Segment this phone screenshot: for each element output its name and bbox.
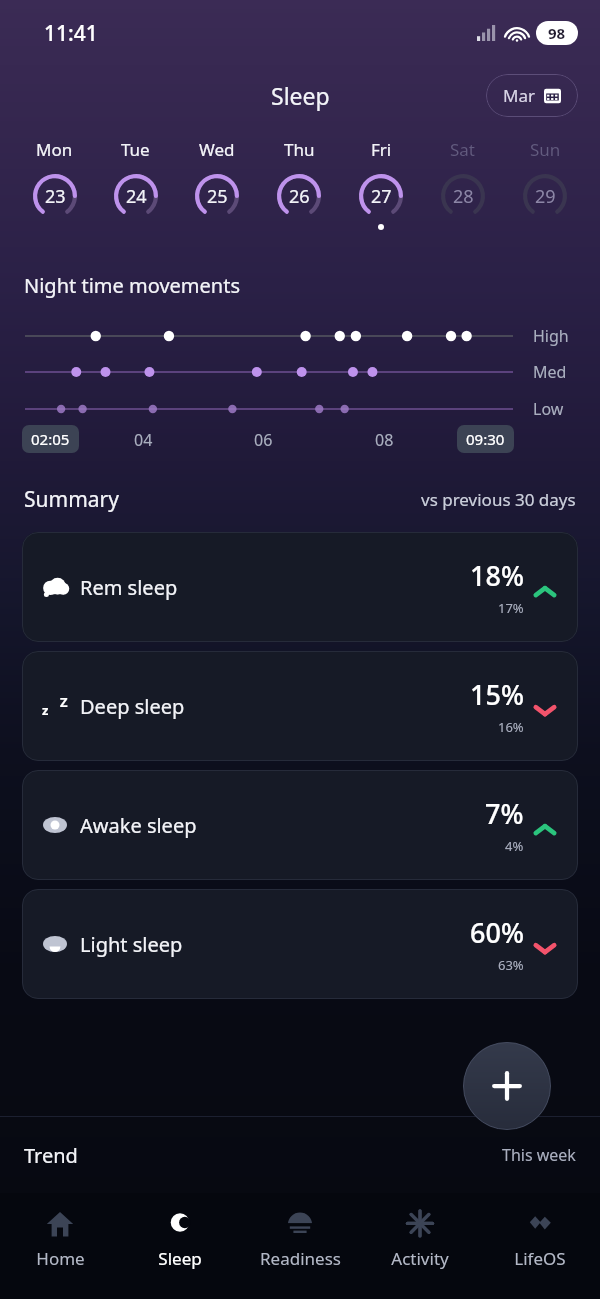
staticText: Med — [533, 361, 567, 383]
button[interactable]: Wed — [176, 138, 258, 230]
staticText: Fri — [371, 138, 392, 161]
staticText: Thu — [284, 138, 315, 161]
staticText: Z — [60, 693, 68, 711]
staticText: 04 — [134, 429, 153, 451]
staticText: 63% — [498, 956, 524, 974]
staticText: Summary — [24, 485, 119, 514]
staticText: z — [42, 701, 49, 719]
button[interactable]: Sun — [504, 138, 586, 230]
staticText: 06 — [254, 429, 273, 451]
button[interactable]: Mon — [14, 138, 95, 230]
staticText: High — [533, 325, 569, 347]
button[interactable]: Awake sleep — [22, 770, 578, 880]
button[interactable]: Add — [463, 1042, 551, 1130]
staticText: 60% — [470, 914, 524, 951]
button[interactable]: Activity — [360, 1193, 480, 1299]
staticText: Sat — [450, 138, 476, 161]
staticText: Tue — [121, 138, 150, 161]
button[interactable]: Rem sleep — [22, 532, 578, 642]
staticText: Mon — [36, 138, 73, 161]
staticText: Trend — [24, 1142, 78, 1169]
staticText: 23 — [45, 184, 66, 209]
button[interactable]: Sat — [422, 138, 504, 230]
staticText: 98 — [548, 23, 566, 43]
staticText: 17% — [498, 599, 524, 617]
staticText: Low — [533, 398, 564, 420]
button[interactable]: Sleep — [120, 1193, 240, 1299]
button[interactable]: z — [22, 651, 578, 761]
staticText: LifeOS — [514, 1247, 566, 1270]
staticText: 18% — [470, 557, 524, 594]
staticText: Sleep — [158, 1247, 202, 1270]
staticText: 28 — [453, 184, 474, 209]
button[interactable]: Thu — [258, 138, 340, 230]
staticText: Sleep — [271, 80, 330, 111]
staticText: 09:30 — [466, 429, 505, 449]
staticText: Wed — [199, 138, 235, 161]
staticText: 26 — [289, 184, 310, 209]
staticText: Deep sleep — [80, 693, 185, 720]
staticText: Awake sleep — [80, 812, 197, 839]
staticText: Rem sleep — [80, 574, 178, 601]
staticText: Light sleep — [80, 931, 183, 958]
button[interactable]: Mar — [486, 74, 578, 117]
staticText: 29 — [535, 184, 556, 209]
staticText: Readiness — [260, 1247, 341, 1270]
staticText: vs previous 30 days — [421, 488, 576, 511]
staticText: 7% — [485, 795, 524, 832]
staticText: Mar — [503, 84, 535, 107]
staticText: 16% — [498, 718, 524, 736]
button[interactable]: Readiness — [240, 1193, 360, 1299]
button[interactable]: LifeOS — [480, 1193, 600, 1299]
staticText: 02:05 — [31, 429, 70, 449]
button[interactable]: Fri — [340, 138, 422, 230]
staticText: 4% — [505, 837, 524, 855]
button[interactable]: Home — [0, 1193, 120, 1299]
staticText: 25 — [207, 184, 228, 209]
staticText: Home — [36, 1247, 85, 1270]
staticText: 11:41 — [44, 19, 98, 48]
staticText: 08 — [375, 429, 394, 451]
staticText: Activity — [391, 1247, 449, 1270]
staticText: 24 — [126, 184, 147, 209]
staticText: 27 — [371, 184, 392, 209]
button[interactable]: Tue — [95, 138, 176, 230]
staticText: Sun — [530, 138, 561, 161]
staticText: This week — [502, 1144, 576, 1166]
staticText: Night time movements — [24, 272, 240, 299]
button[interactable]: Light sleep — [22, 889, 578, 999]
staticText: 15% — [470, 676, 524, 713]
